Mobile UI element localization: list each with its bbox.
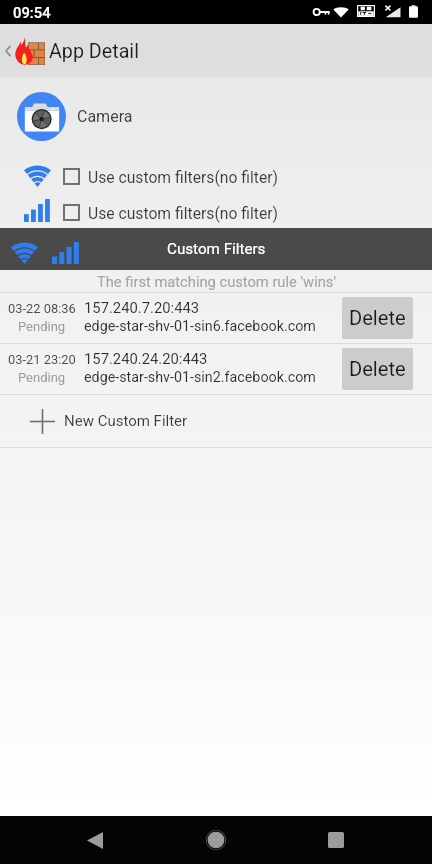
staticText: App Detail: [49, 40, 139, 63]
button[interactable]: 03-21 23:20: [0, 344, 432, 394]
button[interactable]: Recent apps: [313, 816, 359, 864]
staticText: 03-22 08:36: [8, 301, 76, 316]
button[interactable]: New Custom Filter: [0, 395, 432, 447]
staticText: Delete: [349, 357, 406, 381]
button[interactable]: Back: [72, 816, 117, 864]
staticText: The first matching custom rule 'wins': [97, 273, 336, 290]
staticText: 157.240.7.20:443: [84, 299, 200, 316]
staticText: Use custom filters(no filter): [88, 204, 278, 222]
button[interactable]: Delete: [342, 297, 413, 339]
button[interactable]: Use custom filters(no filter): [0, 156, 432, 197]
staticText: Pending: [18, 370, 66, 385]
button[interactable]: 03-22 08:36: [0, 293, 432, 343]
staticText: 03-21 23:20: [8, 352, 76, 367]
staticText: 09:54: [13, 4, 51, 21]
button[interactable]: Camera: [0, 78, 432, 156]
button[interactable]: Delete: [342, 348, 413, 390]
staticText: edge-star-shv-01-sin6.facebook.com: [84, 318, 316, 335]
staticText: Use custom filters(no filter): [88, 168, 278, 186]
staticText: Camera: [77, 107, 133, 126]
button[interactable]: Home: [193, 816, 239, 864]
button[interactable]: Use custom filters(no filter): [0, 197, 432, 228]
staticText: New Custom Filter: [64, 412, 188, 430]
staticText: Custom Filters: [167, 240, 266, 258]
button[interactable]: Navigate up: [1, 24, 14, 75]
staticText: edge-star-shv-01-sin2.facebook.com: [84, 369, 316, 386]
staticText: 157.240.24.20:443: [84, 350, 208, 367]
staticText: Pending: [18, 319, 66, 334]
staticText: Delete: [349, 306, 406, 330]
